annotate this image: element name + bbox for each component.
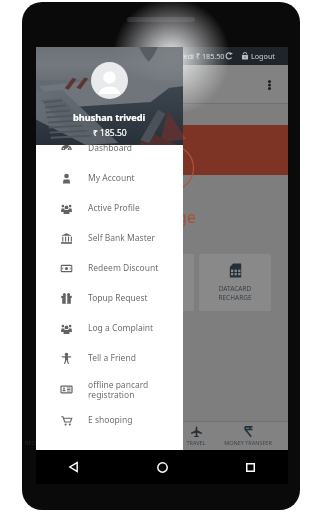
staticText: ₹ 185.50	[196, 51, 236, 61]
button[interactable]: More options	[260, 76, 278, 94]
button[interactable]: Refresh	[222, 49, 236, 63]
button[interactable]: Tell a Friend	[36, 343, 183, 373]
button[interactable]: Back	[62, 455, 86, 479]
staticText: E shooping	[88, 414, 133, 426]
staticText: Logout	[251, 51, 291, 61]
staticText: Tell a Friend	[88, 352, 136, 364]
staticText: Redeem Discount	[88, 262, 159, 274]
button[interactable]: Self Bank Master	[36, 223, 183, 253]
button[interactable]: TRAVEL	[170, 421, 222, 450]
staticText: offline pancard registration	[88, 379, 149, 400]
button[interactable]: Logout	[240, 51, 292, 61]
staticText: My Account	[88, 172, 135, 184]
staticText: bhushan trivedi	[73, 111, 146, 124]
staticText: DATACARD RECHARGE	[218, 284, 252, 302]
button[interactable]: BILLS	[117, 421, 169, 450]
staticText: RECHARGE	[22, 439, 65, 446]
staticText: Topup Request	[88, 292, 148, 304]
button[interactable]: offline pancard registration	[36, 373, 183, 405]
button[interactable]: Topup Request	[36, 283, 183, 313]
button[interactable]: DTH	[65, 421, 117, 450]
staticText: TRAVEL	[170, 439, 222, 446]
button[interactable]: MONEY TRANSFER	[222, 421, 274, 450]
button[interactable]: MOBILE RECHARGE	[45, 254, 117, 311]
button[interactable]: DATACARD RECHARGE	[199, 254, 271, 311]
button[interactable]: Home	[150, 455, 174, 479]
button[interactable]: DTH RECHARGE	[122, 254, 194, 311]
staticText: ₹ 185.50	[93, 127, 127, 139]
staticText: Recharge	[127, 206, 196, 227]
staticText: Active Profile	[88, 202, 140, 214]
button[interactable]: Active Profile	[36, 193, 183, 223]
staticText: MONEY TRANSFER	[222, 439, 274, 446]
staticText: MOBILE RECHARGE	[64, 284, 98, 302]
button[interactable]: My Account	[36, 163, 183, 193]
staticText: bhushan trivedi	[141, 51, 201, 61]
staticText: Dashboard	[88, 142, 133, 154]
staticText: DTH RECHARGE	[141, 284, 175, 302]
button[interactable]: Log a Complaint	[36, 313, 183, 343]
staticText: Self Bank Master	[88, 232, 156, 244]
button[interactable]: Recents	[238, 455, 262, 479]
staticText: Log a Complaint	[88, 322, 154, 334]
button[interactable]: Redeem Discount	[36, 253, 183, 283]
button[interactable]: RECHARGE	[22, 421, 65, 450]
button[interactable]: Dashboard	[36, 133, 183, 163]
button[interactable]: E shooping	[36, 405, 183, 435]
